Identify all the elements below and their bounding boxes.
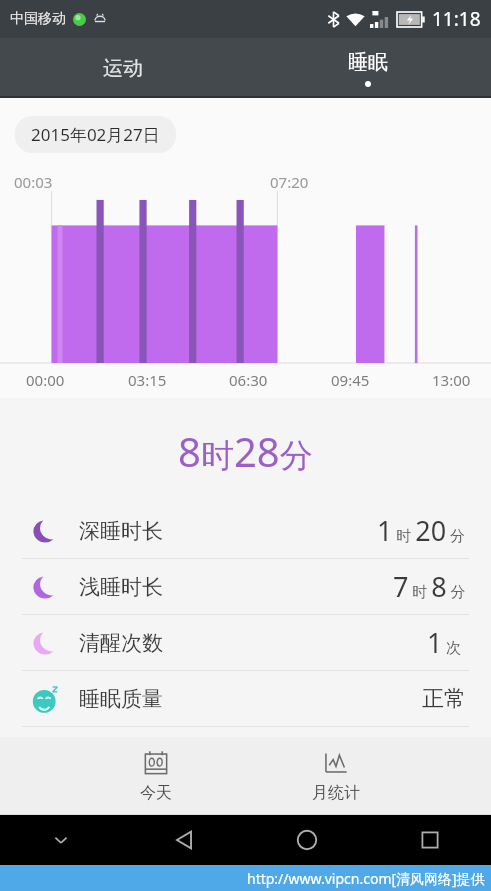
button[interactable]: Home — [245, 815, 368, 865]
button[interactable]: Hide — [0, 815, 122, 865]
button[interactable]: Today — [66, 737, 246, 815]
staticText: 深睡时长 — [79, 518, 163, 544]
staticText: 00:00 — [26, 370, 65, 390]
staticText: 11:18 — [432, 6, 481, 32]
staticText: 2015年02月27日 — [31, 123, 160, 146]
button[interactable]: 2015年02月27日 — [15, 116, 176, 153]
staticText: 7 时 8 分 — [393, 568, 466, 605]
staticText: 13:00 — [432, 370, 471, 390]
staticText: 中国移动 — [10, 10, 66, 28]
staticText: 8时28分 — [178, 424, 313, 478]
button[interactable]: 清醒次数 — [0, 615, 491, 670]
staticText: 07:20 — [270, 172, 309, 192]
other: Monthly statistics — [322, 749, 350, 777]
button[interactable]: 运动 — [0, 38, 245, 98]
staticText: 正常 — [422, 685, 466, 713]
button[interactable]: Recents — [368, 815, 491, 865]
staticText: 03:15 — [128, 370, 167, 390]
button[interactable]: 浅睡时长 — [0, 559, 491, 614]
button[interactable]: 睡眠质量 — [0, 671, 491, 726]
staticText: 浅睡时长 — [79, 574, 163, 600]
button[interactable]: 睡眠 — [245, 38, 491, 98]
button[interactable]: 深睡时长 — [0, 503, 491, 558]
staticText: 今天 — [140, 783, 172, 803]
staticText: 06:30 — [229, 370, 268, 390]
button[interactable]: Back — [122, 815, 245, 865]
staticText: 睡眠质量 — [79, 686, 163, 712]
staticText: 睡眠 — [348, 50, 388, 75]
staticText: 月统计 — [312, 783, 360, 803]
staticText: 00:03 — [14, 172, 53, 192]
staticText: 09:45 — [331, 370, 370, 390]
staticText: 1 时 20 分 — [377, 512, 466, 549]
staticText: 运动 — [103, 56, 143, 81]
button[interactable]: Monthly statistics — [246, 737, 426, 815]
staticText: 1 次 — [427, 624, 466, 661]
staticText: 清醒次数 — [79, 630, 163, 656]
staticText: http://www.vipcn.com[清风网络]提供 — [247, 869, 485, 888]
other: Today — [142, 749, 170, 777]
